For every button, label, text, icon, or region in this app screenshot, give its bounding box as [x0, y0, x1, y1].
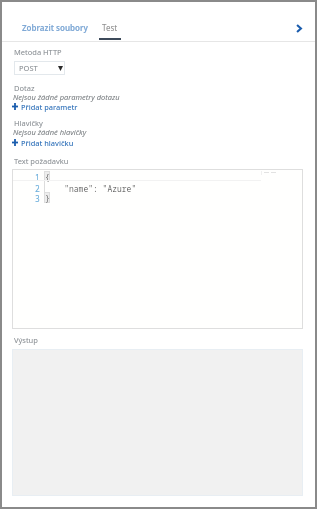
staticText: "name": "Azure": [45, 183, 137, 194]
staticText: Přidat parametr: [21, 102, 78, 112]
button[interactable]: Test: [102, 22, 118, 33]
staticText: Výstup: [14, 335, 38, 345]
button[interactable]: Přidat parametr: [12, 101, 78, 112]
staticText: 3: [35, 193, 40, 204]
staticText: Hlavičky: [14, 118, 43, 128]
staticText: Nejsou žádné parametry dotazu: [13, 92, 120, 102]
staticText: 2: [35, 183, 40, 194]
button[interactable]: Přidat hlavičku: [12, 137, 74, 148]
staticText: Text požadavku: [14, 156, 69, 166]
staticText: Přidat hlavičku: [21, 138, 74, 148]
staticText: {: [45, 172, 50, 183]
staticText: Test: [102, 22, 118, 33]
staticText: Metoda HTTP: [14, 47, 62, 57]
staticText: }: [45, 193, 50, 204]
button[interactable]: POST: [14, 61, 65, 75]
staticText: Nejsou žádné hlavičky: [13, 127, 87, 137]
staticText: Dotaz: [14, 83, 35, 93]
button[interactable]: Expand panel: [289, 18, 309, 38]
staticText: Zobrazit soubory: [22, 22, 88, 33]
button[interactable]: Zobrazit soubory: [22, 22, 88, 33]
staticText: 1: [35, 172, 40, 183]
staticText: POST: [19, 63, 38, 73]
